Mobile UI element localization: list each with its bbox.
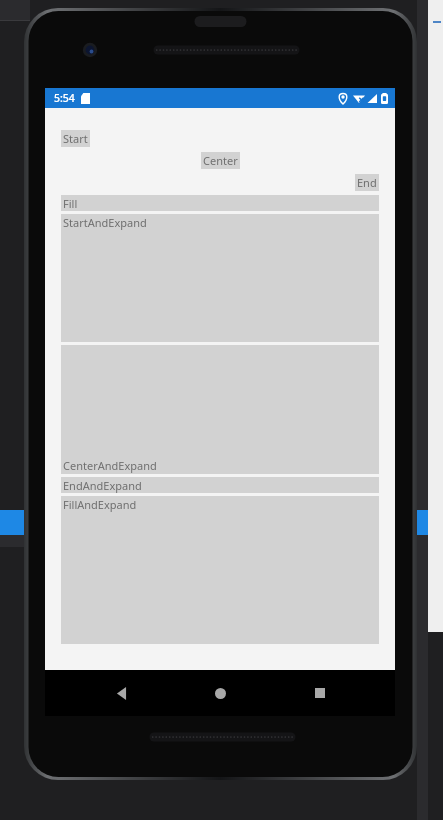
button[interactable]: End [355, 174, 379, 191]
staticText: EndAndExpand [63, 478, 142, 493]
button[interactable]: FillAndExpand [61, 496, 379, 644]
staticText: End [357, 175, 377, 190]
staticText: 5:54 [54, 91, 75, 105]
button[interactable]: EndAndExpand [61, 477, 379, 493]
staticText: FillAndExpand [63, 497, 137, 512]
button[interactable]: CenterAndExpand [61, 345, 379, 474]
button[interactable]: Start [61, 130, 90, 147]
button[interactable]: Center [201, 152, 240, 169]
staticText: Start [63, 131, 88, 146]
button[interactable]: Back [97, 670, 145, 716]
staticText: StartAndExpand [63, 215, 147, 230]
button[interactable]: StartAndExpand [61, 214, 379, 342]
staticText: Fill [63, 196, 78, 211]
button[interactable]: Recent apps [296, 670, 344, 716]
staticText: Center [203, 153, 238, 168]
button[interactable]: Fill [61, 195, 379, 211]
staticText: CenterAndExpand [63, 458, 157, 473]
button[interactable]: Home [196, 670, 244, 716]
